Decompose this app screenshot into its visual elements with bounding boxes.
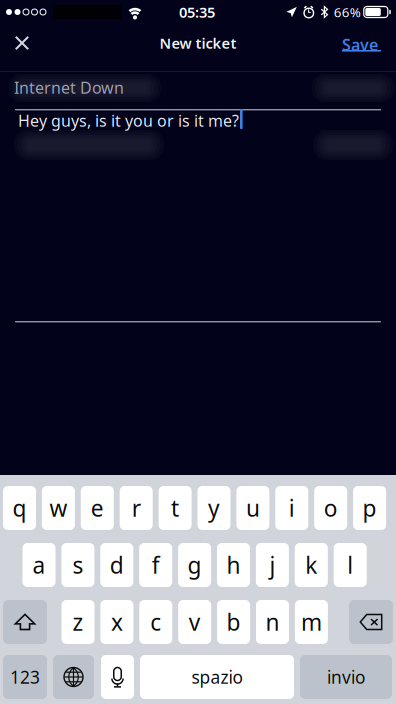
staticText: c	[150, 607, 161, 637]
staticText: p	[363, 493, 377, 523]
staticText: f	[152, 550, 160, 580]
button[interactable]: Save	[342, 26, 396, 60]
button[interactable]: i	[275, 486, 308, 530]
staticText: u	[246, 493, 260, 523]
staticText: o	[324, 493, 338, 523]
button[interactable]: e	[81, 486, 114, 530]
button[interactable]: spazio	[140, 655, 294, 699]
staticText: 66%	[334, 3, 361, 21]
button[interactable]: u	[236, 486, 269, 530]
button[interactable]: f	[139, 543, 172, 587]
staticText: d	[110, 550, 124, 580]
button[interactable]: c	[139, 600, 172, 644]
staticText: g	[188, 550, 202, 580]
button[interactable]: Dictate	[101, 655, 134, 699]
staticText: y	[208, 493, 220, 523]
button[interactable]: k	[295, 543, 328, 587]
button[interactable]: m	[295, 600, 328, 644]
button[interactable]: invio	[300, 655, 392, 699]
staticText: q	[12, 493, 26, 523]
staticText: r	[132, 493, 141, 523]
button[interactable]: x	[100, 600, 133, 644]
staticText: invio	[327, 665, 365, 688]
button[interactable]: Next keyboard	[53, 655, 94, 699]
button[interactable]: b	[217, 600, 250, 644]
staticText: n	[265, 607, 279, 637]
staticText: h	[226, 550, 240, 580]
staticText: v	[189, 607, 201, 637]
staticText: a	[32, 550, 45, 580]
button[interactable]: p	[353, 486, 386, 530]
staticText: w	[49, 493, 67, 523]
staticText: l	[347, 550, 353, 580]
staticText: 05:35	[179, 2, 215, 22]
button[interactable]: s	[61, 543, 94, 587]
button[interactable]: l	[334, 543, 367, 587]
staticText: x	[111, 607, 123, 637]
staticText: Internet Down	[14, 77, 124, 98]
button[interactable]: g	[178, 543, 211, 587]
staticText: t	[171, 493, 179, 523]
staticText: Save	[342, 34, 378, 55]
staticText: 123	[10, 665, 40, 688]
button[interactable]: t	[159, 486, 192, 530]
staticText: m	[301, 607, 322, 637]
button[interactable]: d	[100, 543, 133, 587]
staticText: e	[91, 493, 104, 523]
button[interactable]: Delete	[349, 600, 393, 644]
button[interactable]: n	[256, 600, 289, 644]
button[interactable]: Shift	[3, 600, 47, 644]
staticText: i	[289, 493, 295, 523]
staticText: b	[227, 607, 241, 637]
button[interactable]: r	[120, 486, 153, 530]
button[interactable]: w	[42, 486, 75, 530]
button[interactable]: Close	[0, 26, 44, 60]
staticText: z	[72, 607, 83, 637]
button[interactable]: q	[3, 486, 36, 530]
staticText: k	[305, 550, 317, 580]
staticText: s	[72, 550, 83, 580]
button[interactable]: o	[314, 486, 347, 530]
button[interactable]: 123	[3, 655, 47, 699]
staticText: Hey guys, is it you or is it me?	[18, 110, 239, 131]
staticText: j	[269, 550, 275, 580]
button[interactable]: y	[197, 486, 230, 530]
button[interactable]: z	[61, 600, 94, 644]
button[interactable]: v	[178, 600, 211, 644]
staticText: New ticket	[159, 33, 236, 53]
button[interactable]: j	[256, 543, 289, 587]
button[interactable]: a	[22, 543, 55, 587]
staticText: spazio	[191, 665, 242, 688]
button[interactable]: h	[217, 543, 250, 587]
